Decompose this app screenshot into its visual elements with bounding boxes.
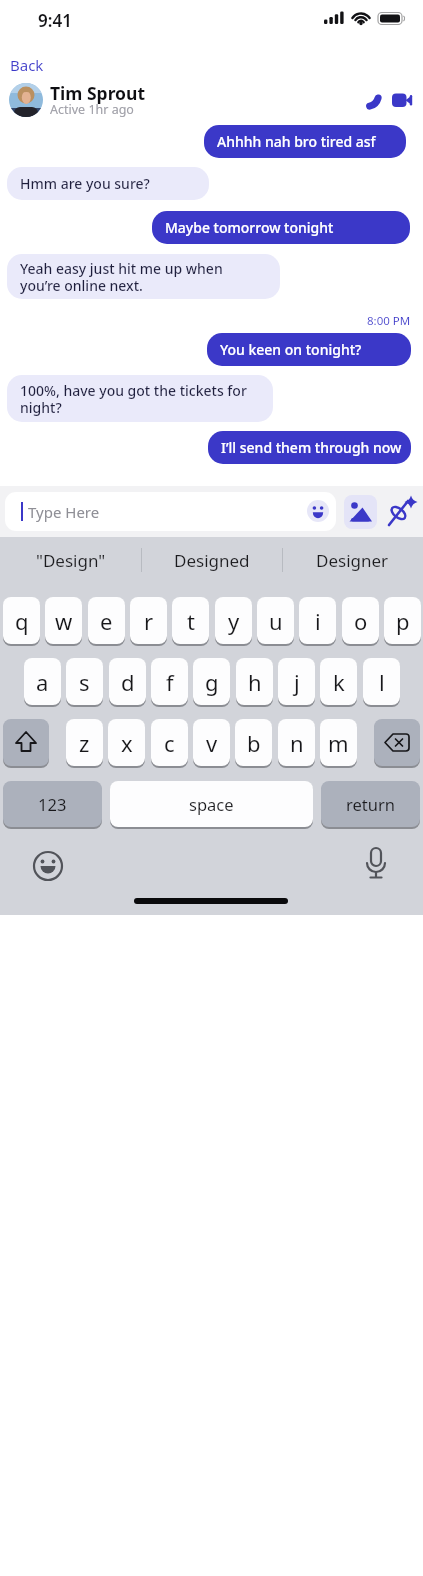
- staticText: 100%, have you got the tickets for night…: [20, 381, 247, 417]
- staticText: Ahhhh nah bro tired asf: [217, 132, 376, 151]
- button[interactable]: return: [321, 781, 420, 827]
- staticText: k: [333, 667, 345, 697]
- button[interactable]: t: [172, 597, 209, 644]
- button[interactable]: x: [108, 719, 145, 766]
- staticText: t: [187, 606, 195, 636]
- button[interactable]: f: [151, 658, 188, 705]
- staticText: Tim Sprout: [50, 81, 146, 105]
- button[interactable]: Type Here: [5, 492, 336, 531]
- button[interactable]: v: [193, 719, 230, 766]
- button[interactable]: Hmm are you sure?: [7, 167, 209, 200]
- button[interactable]: "Design": [0, 537, 141, 583]
- button[interactable]: [374, 719, 420, 766]
- staticText: return: [346, 793, 395, 815]
- staticText: p: [396, 606, 410, 636]
- button[interactable]: [344, 495, 377, 529]
- staticText: v: [206, 728, 218, 758]
- button[interactable]: s: [66, 658, 103, 705]
- staticText: f: [166, 667, 174, 697]
- staticText: b: [247, 728, 261, 758]
- button[interactable]: n: [278, 719, 315, 766]
- button[interactable]: h: [236, 658, 273, 705]
- staticText: l: [379, 667, 385, 697]
- button[interactable]: Maybe tomorrow tonight: [152, 211, 410, 244]
- button[interactable]: c: [151, 719, 188, 766]
- button[interactable]: i: [299, 597, 336, 644]
- staticText: Designer: [316, 549, 389, 572]
- staticText: Designed: [174, 549, 250, 572]
- staticText: w: [55, 606, 73, 636]
- button[interactable]: I’ll send them through now: [208, 431, 411, 464]
- button[interactable]: Designer: [282, 537, 423, 583]
- button[interactable]: [392, 93, 414, 108]
- button[interactable]: g: [193, 658, 230, 705]
- staticText: h: [248, 667, 262, 697]
- staticText: n: [290, 728, 304, 758]
- button[interactable]: Ahhhh nah bro tired asf: [204, 125, 406, 158]
- staticText: 9:41: [38, 9, 72, 32]
- button[interactable]: l: [363, 658, 400, 705]
- button[interactable]: w: [45, 597, 82, 644]
- button[interactable]: space: [110, 781, 313, 827]
- staticText: Maybe tomorrow tonight: [165, 218, 334, 237]
- button[interactable]: 100%, have you got the tickets for night…: [7, 375, 273, 422]
- button[interactable]: y: [215, 597, 252, 644]
- staticText: Yeah easy just hit me up when you’re onl…: [20, 259, 223, 295]
- staticText: Active 1hr ago: [50, 101, 134, 118]
- button[interactable]: u: [257, 597, 294, 644]
- button[interactable]: p: [384, 597, 421, 644]
- staticText: a: [36, 667, 49, 697]
- staticText: You keen on tonight?: [220, 340, 362, 359]
- staticText: 8:00 PM: [367, 313, 411, 329]
- button[interactable]: b: [235, 719, 272, 766]
- button[interactable]: j: [278, 658, 315, 705]
- button[interactable]: a: [24, 658, 61, 705]
- staticText: "Design": [36, 549, 106, 572]
- button[interactable]: r: [130, 597, 167, 644]
- staticText: q: [15, 606, 29, 636]
- staticText: u: [269, 606, 283, 636]
- button[interactable]: [32, 850, 64, 882]
- button[interactable]: m: [320, 719, 357, 766]
- button[interactable]: k: [320, 658, 357, 705]
- button[interactable]: [9, 83, 43, 117]
- button[interactable]: [361, 846, 391, 888]
- staticText: z: [79, 728, 90, 758]
- staticText: i: [315, 606, 321, 636]
- staticText: j: [294, 667, 300, 697]
- button[interactable]: [384, 494, 418, 530]
- staticText: c: [164, 728, 175, 758]
- button[interactable]: You keen on tonight?: [207, 333, 411, 366]
- staticText: y: [228, 606, 240, 636]
- staticText: space: [189, 793, 234, 815]
- button[interactable]: q: [3, 597, 40, 644]
- button[interactable]: Yeah easy just hit me up when you’re onl…: [7, 254, 280, 299]
- staticText: Back: [10, 55, 44, 75]
- staticText: m: [328, 728, 349, 758]
- button[interactable]: o: [342, 597, 379, 644]
- button[interactable]: 123: [3, 781, 102, 827]
- button[interactable]: e: [88, 597, 125, 644]
- staticText: 123: [38, 793, 67, 815]
- staticText: s: [79, 667, 90, 697]
- button[interactable]: [363, 91, 383, 111]
- staticText: d: [121, 667, 135, 697]
- staticText: o: [354, 606, 368, 636]
- button[interactable]: Designed: [141, 537, 282, 583]
- staticText: g: [205, 667, 219, 697]
- staticText: e: [100, 606, 113, 636]
- button[interactable]: [3, 719, 49, 766]
- staticText: I’ll send them through now: [221, 438, 402, 457]
- staticText: x: [121, 728, 133, 758]
- button[interactable]: z: [66, 719, 103, 766]
- button[interactable]: d: [109, 658, 146, 705]
- button[interactable]: Back: [10, 55, 44, 75]
- staticText: Hmm are you sure?: [20, 174, 150, 193]
- staticText: r: [144, 606, 154, 636]
- staticText: Type Here: [28, 502, 100, 522]
